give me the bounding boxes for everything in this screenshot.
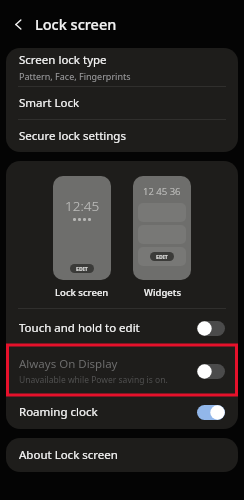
staticText: Smart Lock (19, 95, 80, 111)
button[interactable]: About Lock screen (6, 438, 238, 472)
button[interactable]: Roaming clock (6, 395, 238, 429)
button[interactable]: Off (197, 364, 225, 379)
button[interactable]: Smart Lock (6, 87, 238, 119)
staticText: Always On Display (19, 356, 118, 372)
button[interactable]: EDIT (70, 264, 94, 273)
staticText: Unavailable while Power saving is on. (19, 374, 168, 386)
button[interactable]: 12:45 (53, 176, 111, 280)
staticText: EDIT (76, 265, 88, 272)
button[interactable]: Touch and hold to edit (6, 309, 238, 347)
staticText: EDIT (156, 253, 168, 260)
button[interactable]: Off (197, 321, 225, 336)
staticText: Screen lock type (19, 52, 107, 68)
button[interactable]: On (197, 405, 225, 420)
button[interactable]: 12 45 36 (133, 176, 191, 280)
staticText: Lock screen (55, 286, 109, 299)
button[interactable]: Always On Display (6, 347, 238, 395)
staticText: About Lock screen (19, 447, 118, 463)
staticText: Touch and hold to edit (19, 320, 140, 336)
staticText: Roaming clock (19, 404, 98, 420)
staticText: 12:45 (65, 197, 100, 215)
staticText: Secure lock settings (19, 128, 126, 144)
staticText: Widgets (144, 286, 181, 299)
staticText: Lock screen (35, 14, 117, 34)
staticText: Pattern, Face, Fingerprints (19, 70, 131, 82)
button[interactable]: Screen lock type (6, 48, 238, 86)
button[interactable]: Back (5, 11, 31, 37)
staticText: 12 45 36 (143, 185, 181, 198)
button[interactable]: EDIT (150, 252, 174, 261)
button[interactable]: Secure lock settings (6, 120, 238, 152)
